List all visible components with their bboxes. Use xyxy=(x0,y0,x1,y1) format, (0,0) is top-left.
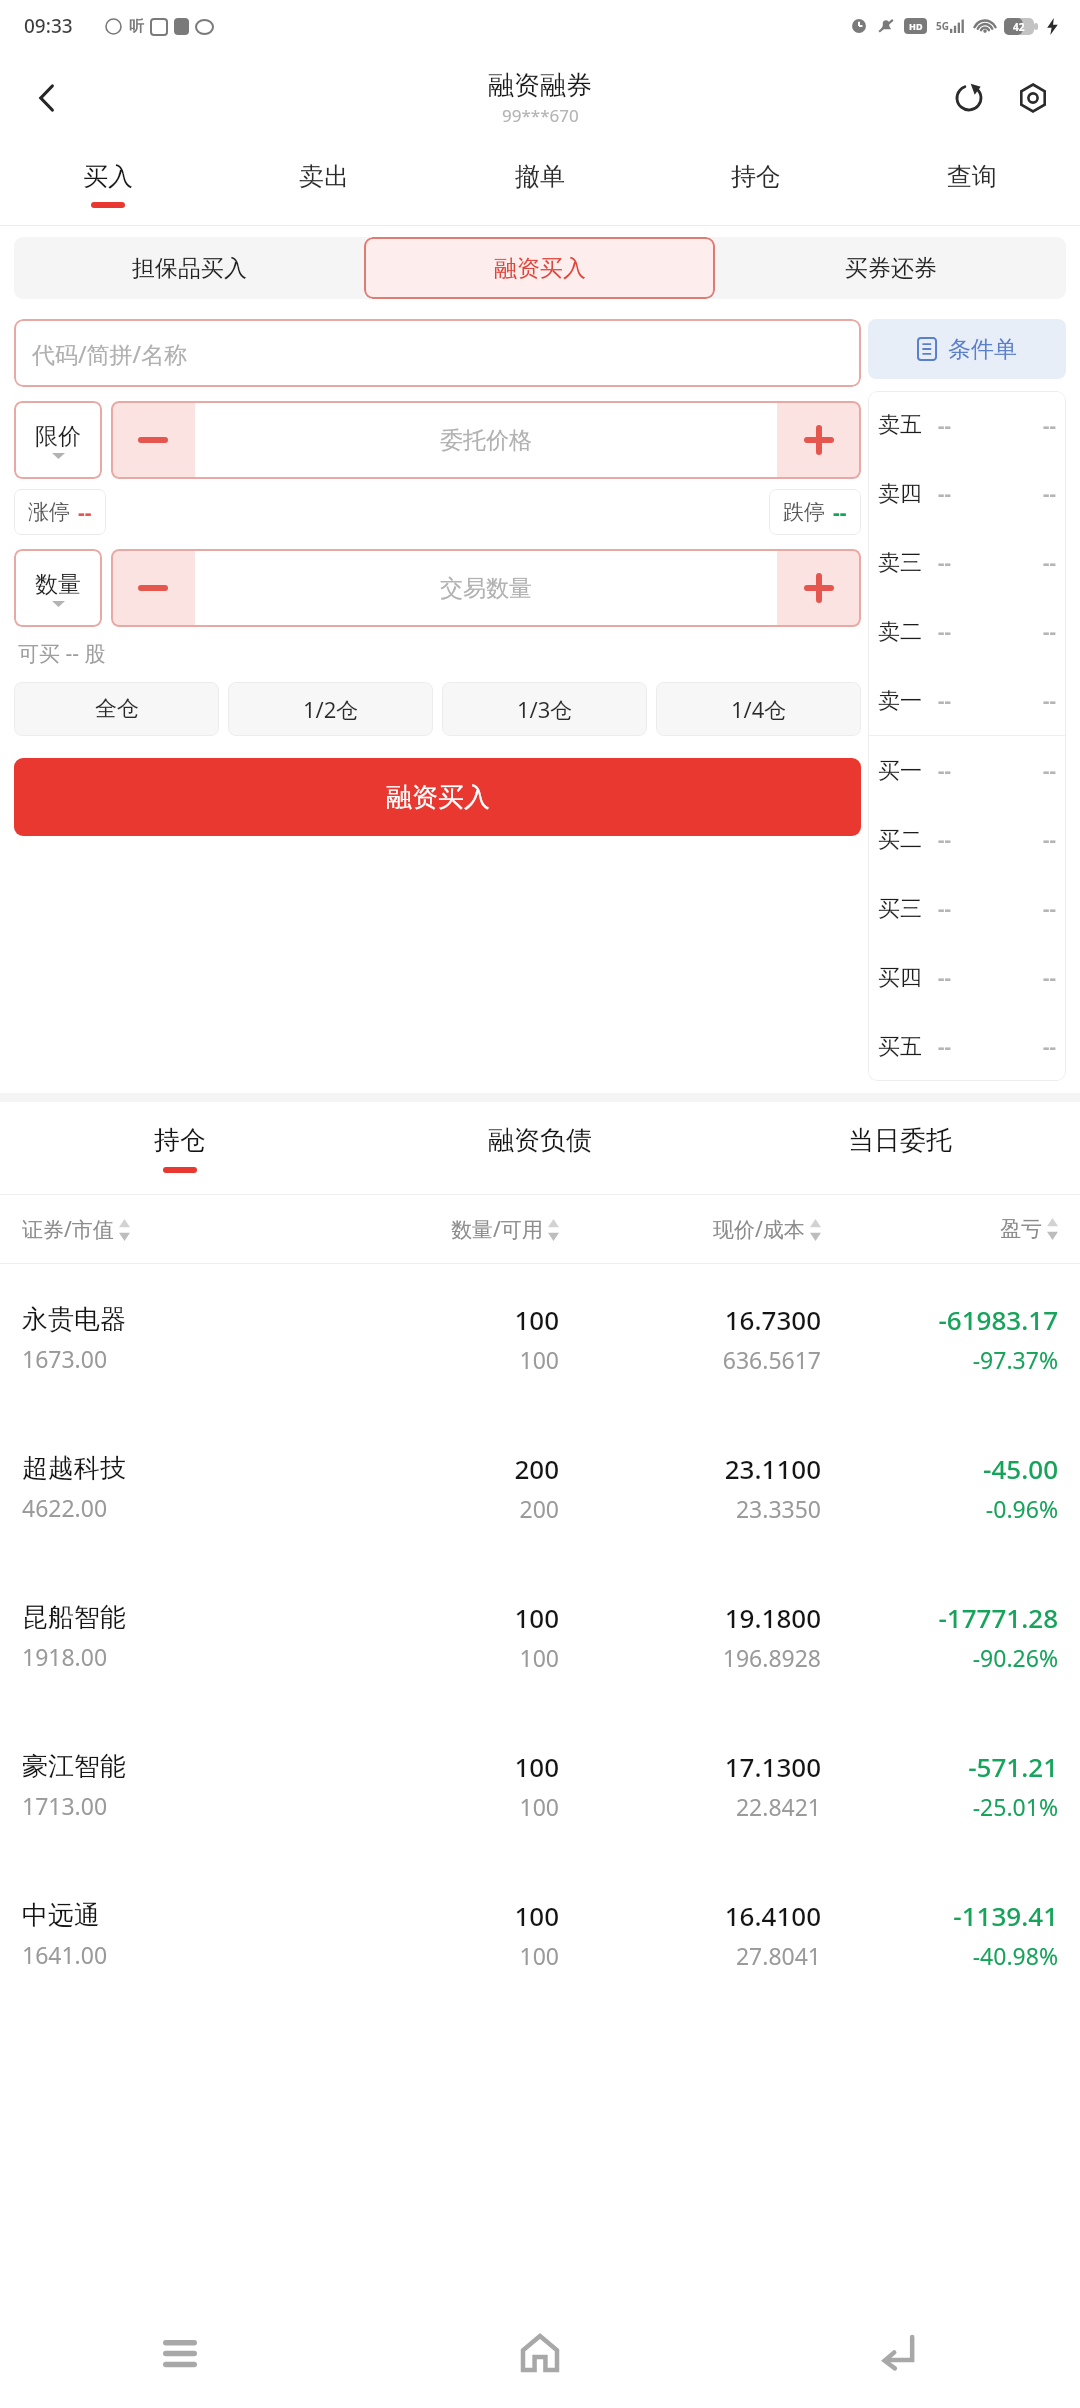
staticText: 担保品买入 xyxy=(132,254,247,283)
staticText: 当日委托 xyxy=(848,1124,952,1157)
button[interactable]: 全仓 xyxy=(14,682,219,736)
staticText: 17.1300 xyxy=(724,1749,821,1784)
button[interactable]: 买入 xyxy=(0,143,216,225)
button[interactable]: 卖二 xyxy=(878,597,1056,666)
button[interactable]: 融资买入 xyxy=(14,758,861,836)
staticText: 全仓 xyxy=(95,695,139,723)
staticText: 100 xyxy=(514,1898,559,1933)
staticText: 融资买入 xyxy=(494,254,586,283)
staticText: 99***670 xyxy=(502,104,579,127)
button[interactable]: 限价 xyxy=(14,401,102,479)
staticText: -- xyxy=(938,826,951,853)
staticText: 100 xyxy=(514,1749,559,1784)
button[interactable]: 卖一 xyxy=(878,666,1056,735)
button[interactable]: 持仓 xyxy=(648,143,864,225)
staticText: 16.7300 xyxy=(724,1302,821,1337)
staticText: -90.26% xyxy=(972,1642,1058,1673)
button[interactable]: Decrease xyxy=(111,401,195,479)
staticText: 636.5617 xyxy=(722,1344,821,1375)
staticText: -- xyxy=(833,498,847,527)
staticText: 23.3350 xyxy=(735,1493,821,1524)
button[interactable]: 永贵电器 xyxy=(22,1264,1058,1413)
button[interactable]: Increase xyxy=(777,401,861,479)
staticText: -61983.17 xyxy=(938,1302,1058,1337)
staticText: -- xyxy=(938,895,951,922)
button[interactable]: 融资负债 xyxy=(360,1102,720,1194)
staticText: -- xyxy=(1043,687,1056,714)
staticText: -- xyxy=(938,480,951,507)
staticText: 100 xyxy=(514,1600,559,1635)
button[interactable]: Back xyxy=(22,72,74,124)
staticText: 卖五 xyxy=(878,411,922,439)
button[interactable]: 当日委托 xyxy=(720,1102,1080,1194)
button[interactable]: 豪江智能 xyxy=(22,1711,1058,1860)
staticText: -- xyxy=(1043,895,1056,922)
button[interactable]: 查询 xyxy=(864,143,1080,225)
button[interactable]: 担保品买入 xyxy=(14,237,364,299)
staticText: 100 xyxy=(519,1642,559,1673)
button[interactable]: 买二 xyxy=(878,805,1056,874)
staticText: 22.8421 xyxy=(735,1791,821,1822)
staticText: 1/4仓 xyxy=(731,694,787,724)
staticText: -- xyxy=(1043,618,1056,645)
button[interactable]: 撤单 xyxy=(432,143,648,225)
staticText: 豪江智能 xyxy=(22,1750,126,1783)
button[interactable]: 卖五 xyxy=(878,391,1056,459)
staticText: -- xyxy=(1043,412,1056,439)
staticText: 限价 xyxy=(35,422,81,451)
staticText: 1713.00 xyxy=(22,1790,108,1821)
button[interactable]: 持仓 xyxy=(0,1102,360,1194)
staticText: 16.4100 xyxy=(724,1898,821,1933)
button[interactable]: 交易数量 xyxy=(195,549,777,627)
button[interactable]: 买券还券 xyxy=(715,237,1066,299)
button[interactable]: 超越科技 xyxy=(22,1413,1058,1562)
staticText: -571.21 xyxy=(968,1749,1058,1784)
button[interactable]: Recents xyxy=(0,2298,360,2408)
button[interactable]: Increase xyxy=(777,549,861,627)
staticText: 跌停 xyxy=(783,499,825,525)
button[interactable]: Refresh xyxy=(946,75,992,121)
button[interactable]: 数量 xyxy=(14,549,102,627)
button[interactable]: Back xyxy=(720,2298,1080,2408)
button[interactable]: Home xyxy=(360,2298,720,2408)
staticText: -- xyxy=(938,687,951,714)
button[interactable]: 买三 xyxy=(878,874,1056,943)
button[interactable]: 代码/简拼/名称 xyxy=(14,319,861,387)
button[interactable]: 数量/可用 xyxy=(309,1215,559,1244)
staticText: 买一 xyxy=(878,757,922,785)
staticText: -- xyxy=(938,757,951,784)
button[interactable]: 证券/市值 xyxy=(22,1215,309,1244)
staticText: 27.8041 xyxy=(735,1940,821,1971)
button[interactable]: 卖出 xyxy=(216,143,432,225)
button[interactable]: 委托价格 xyxy=(195,401,777,479)
button[interactable]: 卖四 xyxy=(878,459,1056,528)
staticText: 100 xyxy=(519,1344,559,1375)
button[interactable]: 盈亏 xyxy=(821,1216,1058,1242)
staticText: 持仓 xyxy=(731,161,781,192)
button[interactable]: 1/4仓 xyxy=(656,682,861,736)
staticText: 卖二 xyxy=(878,618,922,646)
button[interactable]: Settings xyxy=(1010,75,1056,121)
button[interactable]: 买四 xyxy=(878,943,1056,1012)
staticText: 委托价格 xyxy=(440,426,532,455)
button[interactable]: 融资买入 xyxy=(364,237,715,299)
button[interactable]: 昆船智能 xyxy=(22,1562,1058,1711)
button[interactable]: Decrease xyxy=(111,549,195,627)
staticText: HD xyxy=(909,20,923,32)
button[interactable]: 现价/成本 xyxy=(559,1215,821,1244)
staticText: 代码/简拼/名称 xyxy=(32,338,188,369)
button[interactable]: 卖三 xyxy=(878,528,1056,597)
staticText: 交易数量 xyxy=(440,574,532,603)
button[interactable]: 涨停 xyxy=(28,489,92,535)
staticText: -1139.41 xyxy=(953,1898,1058,1933)
button[interactable]: 跌停 xyxy=(783,489,847,535)
button[interactable]: 1/3仓 xyxy=(442,682,647,736)
button[interactable]: 买五 xyxy=(878,1012,1056,1081)
button[interactable]: 中远通 xyxy=(22,1860,1058,2009)
button[interactable]: 买一 xyxy=(878,736,1056,805)
button[interactable]: 1/2仓 xyxy=(228,682,433,736)
button[interactable]: 条件单 xyxy=(868,319,1066,379)
staticText: -- xyxy=(78,498,92,527)
staticText: -40.98% xyxy=(972,1940,1058,1971)
staticText: 200 xyxy=(514,1451,559,1486)
